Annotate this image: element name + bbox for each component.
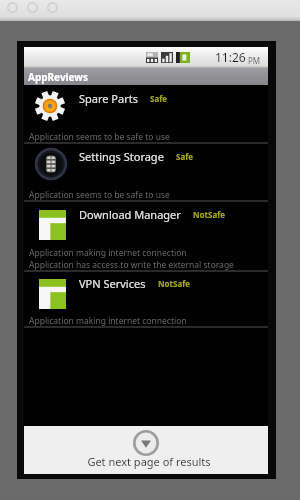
staticText: Safe [176,151,194,162]
button[interactable]: Get next page [24,426,268,474]
button[interactable]: VPN Services [24,271,268,328]
staticText: Spare Parts [79,91,138,106]
staticText: Download Manager [79,207,181,222]
button[interactable]: Settings Storage [24,144,268,202]
staticText: Settings Storage [79,149,164,164]
staticText: Application making internet connection [29,247,187,259]
staticText: Application has access to write the exte… [29,259,234,271]
button[interactable]: Download Manager [24,202,268,272]
staticText: NotSafe [193,209,226,220]
staticText: Application making internet connection [29,315,187,327]
staticText: PM [248,55,261,66]
staticText: Get next page of results [87,454,211,469]
staticText: Application seems to be safe to use [29,189,170,201]
staticText: Safe [150,93,168,104]
staticText: AppReviews [28,70,88,84]
staticText: VPN Services [79,276,146,291]
button[interactable]: Spare Parts [24,85,268,144]
staticText: Application seems to be safe to use [29,131,170,143]
staticText: NotSafe [158,278,191,289]
staticText: 11:26 [215,49,246,65]
other: Get next page [133,430,159,456]
